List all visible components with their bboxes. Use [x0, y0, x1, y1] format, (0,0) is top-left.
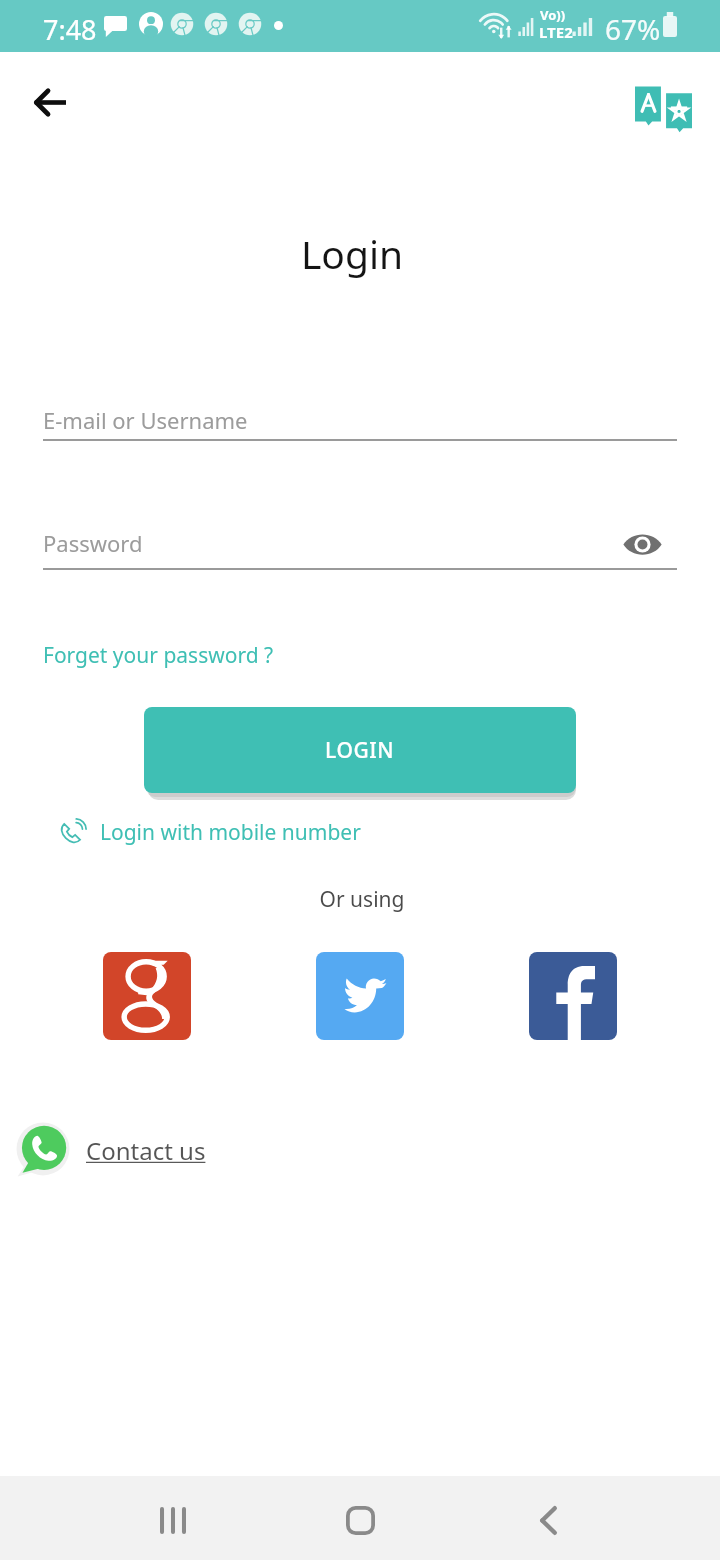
staticText: LOGIN [325, 736, 395, 765]
button[interactable]: Back [488, 1484, 608, 1556]
staticText: Vo)) [540, 6, 566, 24]
staticText: Password [43, 528, 143, 558]
button[interactable]: Login with mobile number [58, 818, 361, 847]
staticText: Contact us [86, 1134, 212, 1167]
staticText: Or using [2, 885, 720, 914]
button[interactable]: Show password [612, 514, 672, 574]
staticText: Login with mobile number [100, 818, 361, 847]
button[interactable]: Forget your password ? [43, 641, 274, 670]
staticText: Forget your password ? [43, 641, 274, 670]
staticText: LTE2 [539, 22, 573, 42]
button[interactable]: Sign in with Twitter [316, 952, 404, 1040]
button[interactable]: Translate [624, 74, 703, 142]
button[interactable]: Home [300, 1484, 420, 1556]
button[interactable]: Recent apps [113, 1484, 233, 1556]
staticText: 7:48 [43, 11, 97, 48]
button[interactable]: LOGIN [144, 707, 576, 793]
staticText: 67% [605, 10, 661, 48]
button[interactable]: Sign in with Google [103, 952, 191, 1040]
staticText: E-mail or Username [43, 405, 248, 435]
button[interactable]: Back [14, 66, 86, 138]
staticText: Login [0, 227, 712, 280]
button[interactable]: Contact us [16, 1123, 212, 1177]
button[interactable]: Sign in with Facebook [529, 952, 617, 1040]
